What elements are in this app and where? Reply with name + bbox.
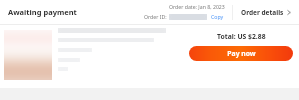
- button[interactable]: Order details: [239, 5, 293, 20]
- staticText: Awaiting payment: [8, 7, 77, 17]
- button[interactable]: Product image: [4, 30, 52, 80]
- staticText: Total: US $2.88: [217, 32, 266, 41]
- button[interactable]: Pay now: [189, 46, 293, 61]
- staticText: Pay now: [227, 49, 256, 58]
- staticText: Order details: [241, 8, 284, 17]
- staticText: Order ID:: [144, 13, 167, 20]
- staticText: Copy: [211, 13, 224, 20]
- staticText: Order date: Jan 8, 2023: [169, 3, 225, 10]
- button[interactable]: Copy: [210, 12, 225, 21]
